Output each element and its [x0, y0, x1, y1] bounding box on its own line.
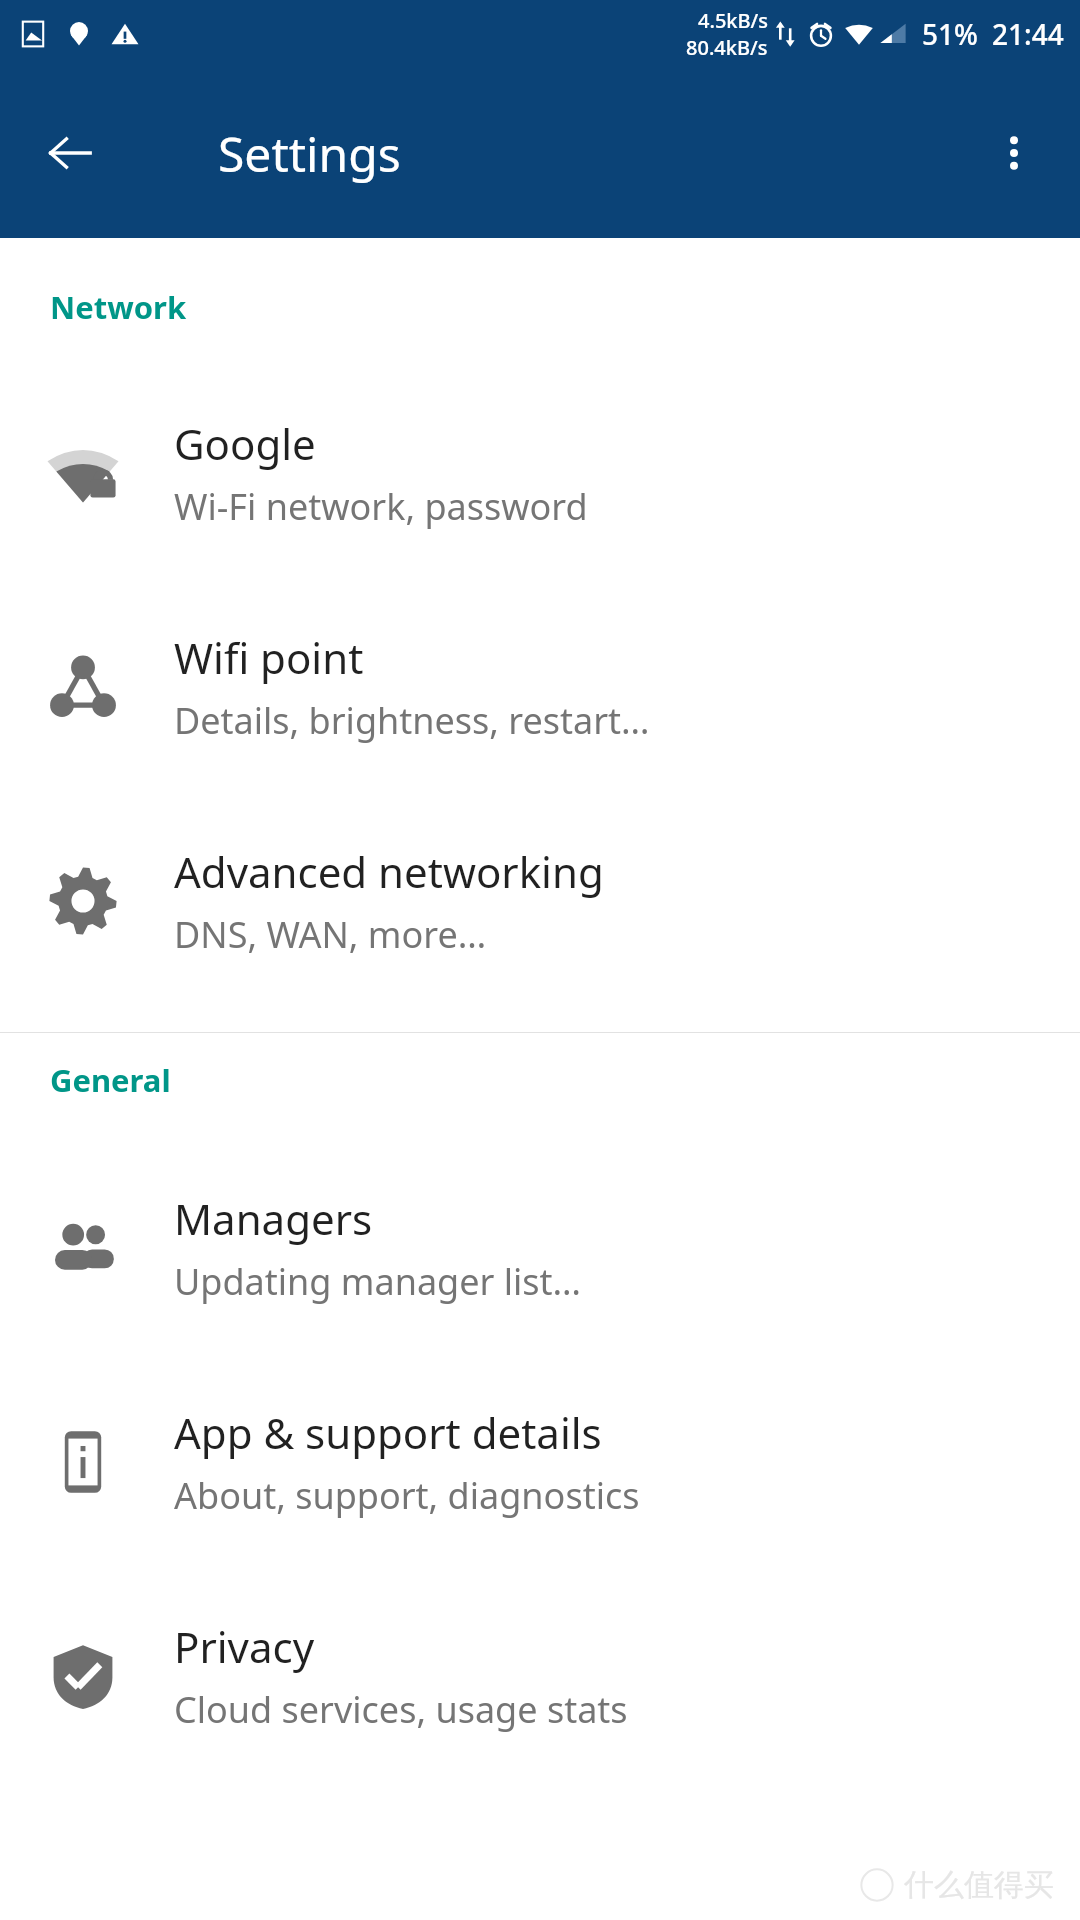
- staticText: Cloud services, usage stats: [174, 1685, 628, 1734]
- staticText: 什么值得买: [904, 1866, 1054, 1904]
- staticText: About, support, diagnostics: [174, 1471, 640, 1520]
- button[interactable]: Managers: [0, 1141, 1080, 1355]
- button[interactable]: Privacy: [0, 1569, 1080, 1783]
- staticText: Wi-Fi network, password: [174, 482, 588, 531]
- button[interactable]: Google: [0, 366, 1080, 580]
- button[interactable]: More options: [974, 113, 1054, 193]
- staticText: Privacy: [174, 1618, 315, 1675]
- staticText: 80.4kB/s: [686, 34, 768, 61]
- staticText: Updating manager list…: [174, 1257, 582, 1306]
- staticText: DNS, WAN, more…: [174, 910, 487, 959]
- staticText: 51%: [922, 15, 978, 53]
- staticText: Network: [50, 286, 187, 328]
- staticText: Advanced networking: [174, 843, 604, 900]
- staticText: Details, brightness, restart…: [174, 696, 650, 745]
- staticText: App & support details: [174, 1404, 602, 1461]
- staticText: Wifi point: [174, 629, 364, 686]
- button[interactable]: App & support details: [0, 1355, 1080, 1569]
- button[interactable]: Wifi point: [0, 580, 1080, 794]
- staticText: 21:44: [992, 15, 1064, 53]
- staticText: 4.5kB/s: [698, 7, 768, 34]
- staticText: Google: [174, 415, 316, 472]
- button[interactable]: Advanced networking: [0, 794, 1080, 1008]
- staticText: General: [50, 1059, 171, 1101]
- staticText: Settings: [218, 121, 401, 186]
- button[interactable]: Back: [30, 113, 110, 193]
- staticText: Managers: [174, 1190, 373, 1247]
